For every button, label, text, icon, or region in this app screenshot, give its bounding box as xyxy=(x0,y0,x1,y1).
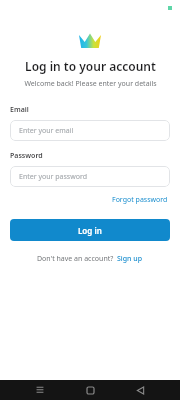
staticText: Sign up xyxy=(117,254,143,264)
button[interactable]: Enter your password xyxy=(10,166,170,187)
button[interactable]: Enter your email xyxy=(10,120,170,141)
button[interactable]: Log in xyxy=(10,219,170,241)
staticText: Password xyxy=(10,151,43,161)
staticText: Enter your password xyxy=(19,172,87,182)
button[interactable]: Forgot password xyxy=(110,193,170,207)
button[interactable]: Sign up xyxy=(116,253,144,265)
staticText: Welcome back! Please enter your details xyxy=(24,79,157,89)
button[interactable]: Back xyxy=(130,380,150,400)
staticText: Enter your email xyxy=(19,126,74,136)
staticText: Log in xyxy=(78,225,102,236)
staticText: Don't have an account? xyxy=(37,254,116,264)
staticText: Forgot password xyxy=(112,195,168,205)
staticText: Email xyxy=(10,105,29,115)
staticText: Log in to your account xyxy=(25,58,156,74)
button[interactable]: Recent apps xyxy=(30,380,50,400)
button[interactable]: Home xyxy=(80,380,100,400)
